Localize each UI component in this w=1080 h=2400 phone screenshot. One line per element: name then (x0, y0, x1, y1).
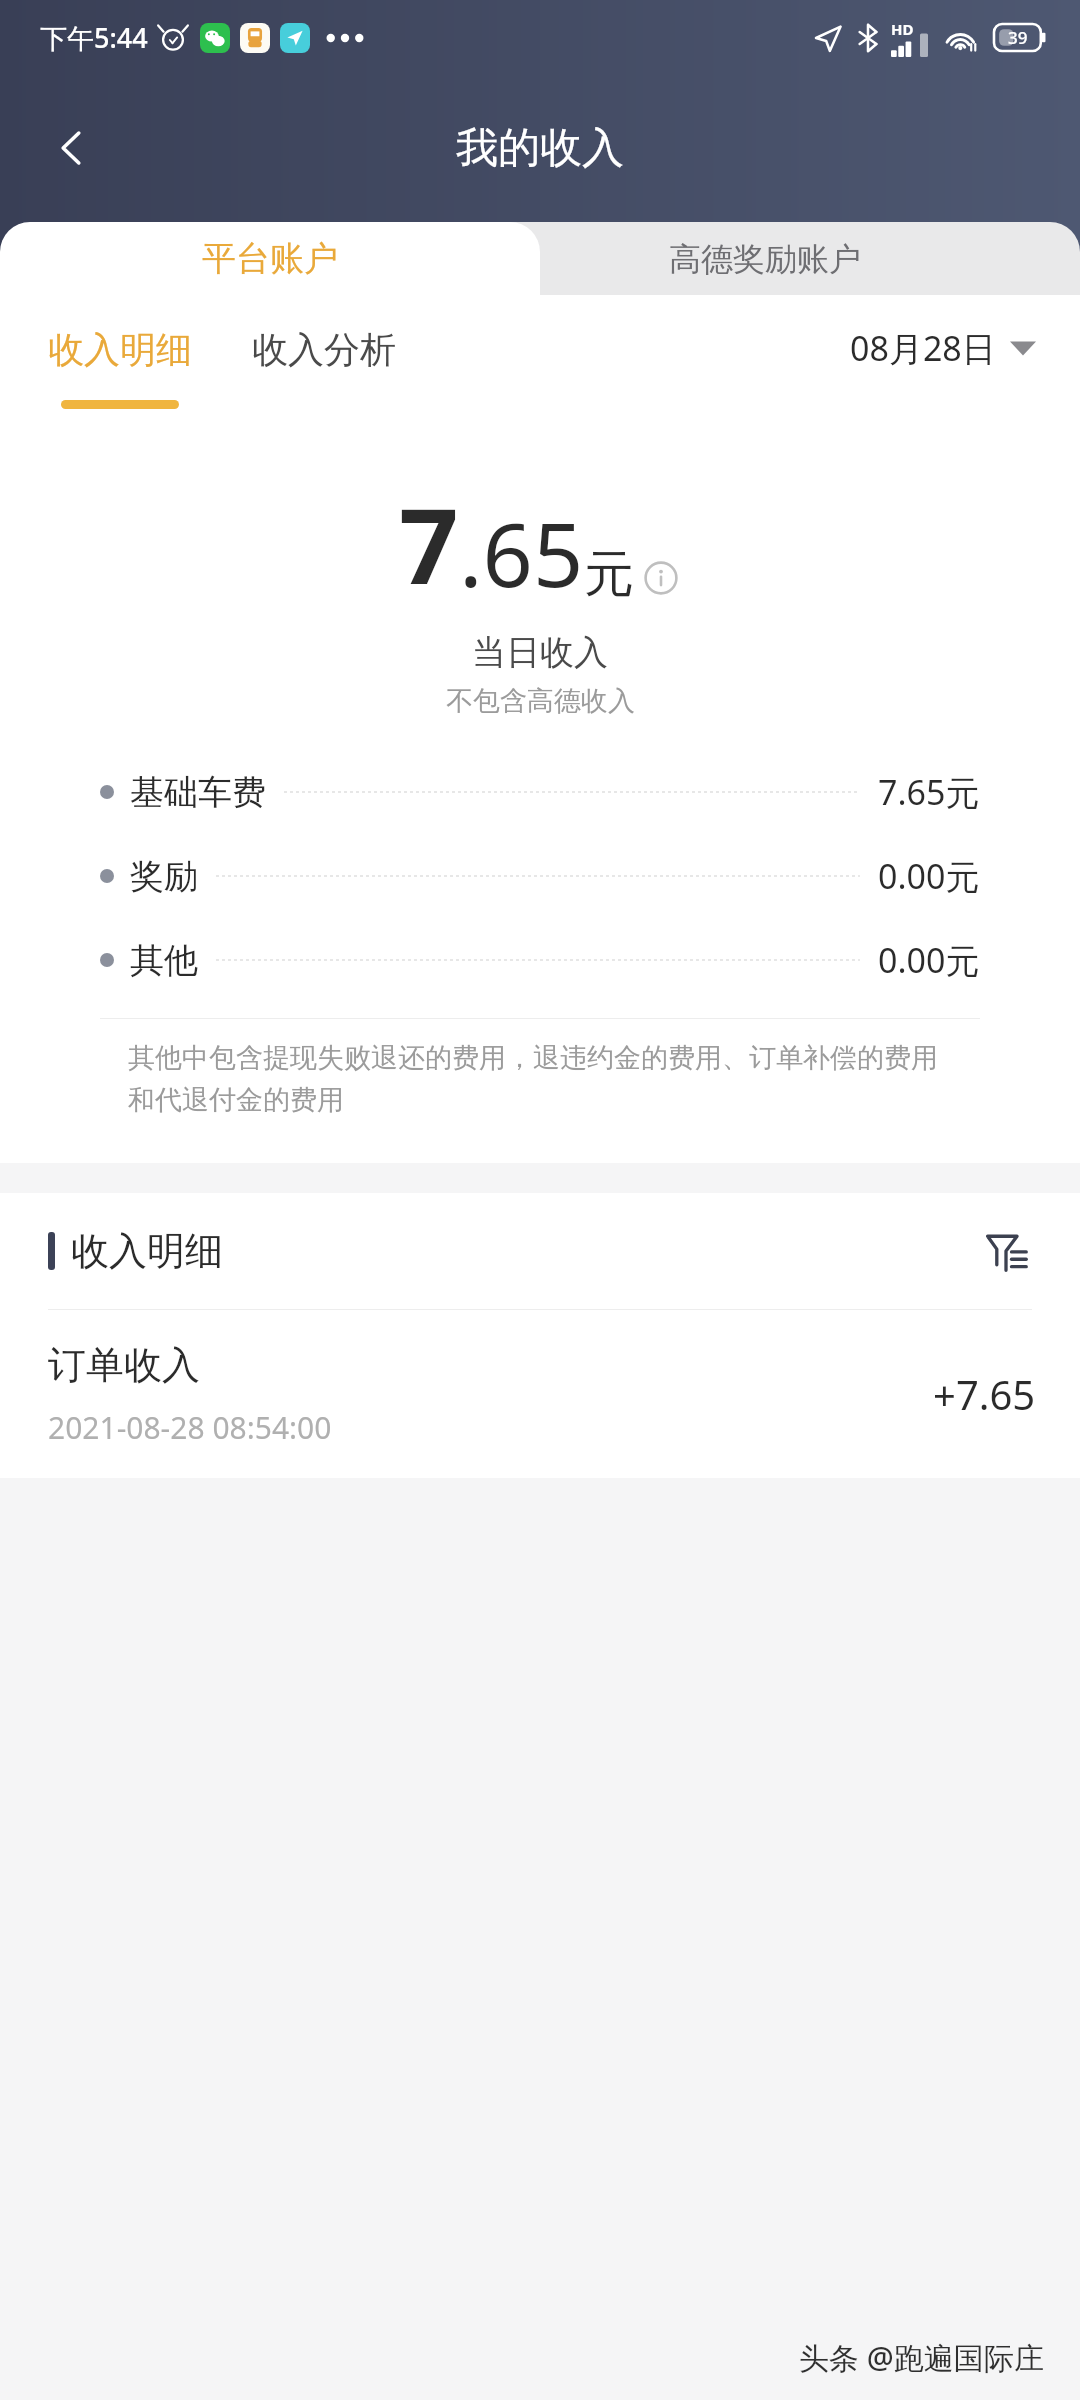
staticText: 其他中包含提现失败退还的费用，退违约金的费用、订单补偿的费用和代退付金的费用 (128, 1041, 952, 1117)
staticText: 当日收入 (472, 631, 608, 674)
button[interactable]: 筛选 (968, 1213, 1044, 1289)
staticText: 基础车费 (130, 771, 266, 814)
button[interactable]: 收入分析 (252, 295, 396, 372)
staticText: 元 (584, 543, 634, 606)
staticText: 39 (1008, 26, 1028, 49)
staticText: 下午5:44 (40, 19, 148, 56)
staticText: 0.00元 (878, 853, 980, 899)
staticText: 08月28日 (850, 325, 996, 371)
staticText: 我的收入 (456, 122, 624, 175)
staticText: 不包含高德收入 (446, 684, 635, 718)
staticText: 订单收入 (48, 1341, 200, 1389)
staticText: 奖励 (130, 855, 198, 898)
staticText: 7.65元 (878, 769, 980, 815)
staticText: 高德奖励账户 (669, 239, 861, 279)
staticText: 收入分析 (252, 327, 396, 372)
staticText: HD (891, 19, 914, 39)
button[interactable]: 高德奖励账户 (481, 222, 1080, 295)
staticText: 7 (399, 473, 459, 615)
button[interactable]: 平台账户 (0, 222, 540, 295)
button[interactable]: 收入明细 (48, 295, 192, 409)
staticText: +7.65 (933, 1367, 1036, 1421)
staticText: .65 (459, 493, 584, 613)
staticText: 收入明细 (48, 327, 192, 372)
staticText: 其他 (130, 939, 198, 982)
staticText: 头条 @跑遍国际庄 (799, 2337, 1044, 2378)
staticText: 0.00元 (878, 937, 980, 983)
staticText: 收入明细 (71, 1227, 223, 1275)
button[interactable]: 返回 (30, 106, 114, 190)
button[interactable]: 收入说明 (640, 557, 682, 599)
staticText: 平台账户 (202, 237, 338, 280)
button[interactable]: 订单收入 (0, 1310, 1080, 1478)
staticText: 2021-08-28 08:54:00 (48, 1407, 332, 1448)
button[interactable]: 08月28日 (850, 325, 1036, 371)
